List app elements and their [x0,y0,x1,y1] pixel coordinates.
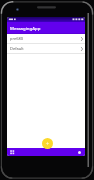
button[interactable]: pre680 [7,34,85,43]
button[interactable] [10,150,15,155]
staticText: pre680 [10,36,24,41]
staticText: Default [10,46,24,51]
button[interactable] [78,151,81,154]
button[interactable]: Default [7,44,85,53]
button[interactable] [42,138,53,149]
staticText: MessagingApp [10,25,41,31]
